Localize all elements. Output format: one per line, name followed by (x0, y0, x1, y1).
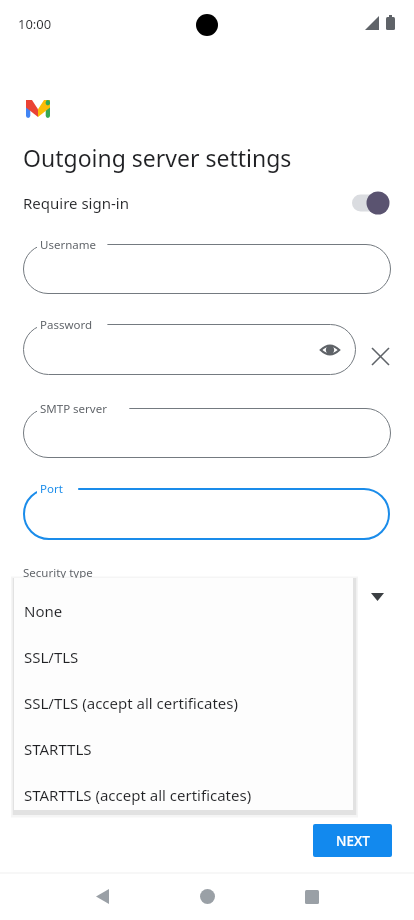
staticText: 10:00 (18, 15, 52, 33)
button[interactable]: Show password (314, 334, 346, 366)
staticText: Require sign-in (23, 193, 129, 213)
staticText: STARTTLS (accept all certificates) (24, 785, 252, 805)
button[interactable]: Back (78, 873, 126, 920)
button[interactable]: STARTTLS (accept all certificates) (14, 772, 353, 818)
button[interactable]: Recent apps (288, 873, 336, 920)
button[interactable]: Require sign-in (0, 186, 414, 220)
button[interactable]: Clear password (364, 340, 396, 372)
staticText: NEXT (336, 832, 370, 850)
button[interactable]: SSL/TLS (accept all certificates) (14, 680, 353, 726)
button[interactable]: SSL/TLS (14, 634, 353, 680)
staticText: Security type (23, 565, 93, 581)
button[interactable]: NEXT (313, 824, 392, 857)
staticText: Port (40, 481, 63, 497)
button[interactable]: Home (183, 873, 231, 920)
staticText: SMTP server (40, 401, 107, 417)
button[interactable]: None (14, 588, 353, 634)
button[interactable]: SMTP server (23, 408, 391, 458)
button[interactable]: Username (23, 244, 391, 294)
staticText: SSL/TLS (accept all certificates) (24, 693, 238, 713)
staticText: None (24, 601, 63, 621)
button[interactable]: Open security type menu (362, 582, 392, 612)
staticText: Username (40, 237, 96, 253)
button[interactable]: Password (23, 324, 356, 375)
staticText: STARTTLS (24, 739, 92, 759)
button[interactable]: Port (23, 488, 390, 540)
staticText: Password (40, 317, 93, 333)
staticText: Outgoing server settings (23, 142, 292, 173)
staticText: SSL/TLS (24, 647, 79, 667)
button[interactable]: STARTTLS (14, 726, 353, 772)
